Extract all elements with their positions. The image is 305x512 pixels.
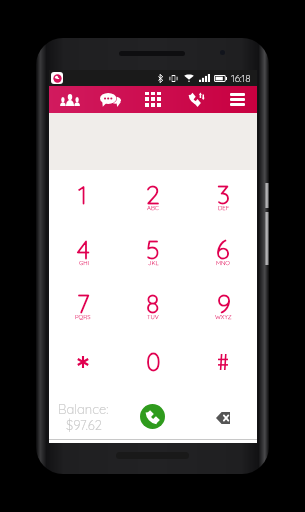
staticText: 6 bbox=[216, 234, 230, 265]
staticText: GHI bbox=[79, 259, 89, 267]
staticText: 4 bbox=[77, 234, 90, 265]
button[interactable]: 7 bbox=[53, 282, 113, 328]
button[interactable]: 8 bbox=[123, 282, 183, 328]
staticText: DEF bbox=[218, 204, 230, 212]
button[interactable]: Backspace bbox=[212, 408, 233, 427]
staticText: 16:18 bbox=[231, 72, 251, 85]
button[interactable]: Messages bbox=[100, 86, 121, 113]
staticText: PQRS bbox=[75, 313, 91, 321]
button[interactable]: 4 bbox=[53, 228, 113, 274]
button[interactable]: 1 bbox=[53, 173, 113, 219]
staticText: 3 bbox=[217, 179, 230, 210]
button[interactable] bbox=[53, 340, 113, 386]
button[interactable]: Dial pad bbox=[145, 86, 161, 113]
staticText: 1 bbox=[78, 179, 88, 210]
button[interactable]: 5 bbox=[123, 228, 183, 274]
button[interactable]: 2 bbox=[123, 173, 183, 219]
staticText: MNO bbox=[216, 259, 230, 267]
staticText: TUV bbox=[147, 313, 159, 321]
button[interactable]: 3 bbox=[193, 173, 253, 219]
staticText: 2 bbox=[146, 179, 160, 210]
staticText: 9 bbox=[217, 288, 231, 319]
button[interactable]: 6 bbox=[193, 228, 253, 274]
staticText: 5 bbox=[146, 234, 160, 265]
button[interactable]: 0 bbox=[123, 340, 183, 386]
staticText: 8 bbox=[146, 288, 160, 319]
staticText: WXYZ bbox=[215, 313, 232, 321]
button[interactable]: Call bbox=[140, 404, 165, 429]
staticText: 7 bbox=[77, 288, 90, 319]
button[interactable]: 9 bbox=[193, 282, 253, 328]
button[interactable]: Contacts bbox=[60, 86, 80, 113]
button[interactable]: Recent calls bbox=[188, 86, 204, 113]
staticText: Balance: bbox=[58, 401, 109, 417]
staticText: $97.62 bbox=[66, 417, 102, 433]
button[interactable]: Menu bbox=[230, 86, 245, 113]
staticText: JKL bbox=[148, 259, 159, 267]
staticText: ABC bbox=[147, 204, 159, 212]
button[interactable]: Balance: bbox=[53, 401, 113, 433]
staticText: 0 bbox=[146, 346, 161, 377]
button[interactable] bbox=[193, 340, 253, 386]
